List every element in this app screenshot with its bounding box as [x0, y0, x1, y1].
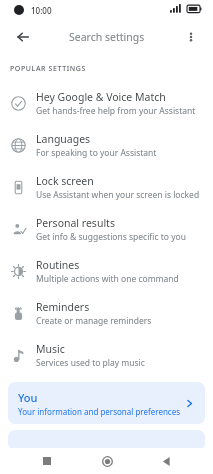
button[interactable]: Languages — [0, 124, 213, 166]
staticText: 10:00 — [31, 5, 52, 16]
button[interactable]: Music — [0, 334, 213, 376]
staticText: POPULAR SETTINGS — [10, 64, 86, 74]
button[interactable]: Home — [94, 448, 120, 474]
button[interactable]: More options — [177, 23, 205, 51]
staticText: Create or manage reminders — [36, 315, 152, 327]
button[interactable]: Routines — [0, 250, 213, 292]
button[interactable]: You — [8, 382, 205, 424]
staticText: Services used to play music — [36, 357, 145, 369]
button[interactable]: Recent apps — [34, 448, 60, 474]
staticText: Music — [36, 342, 65, 356]
staticText: Languages — [36, 132, 91, 146]
staticText: Get hands-free help from your Assistant — [36, 105, 196, 117]
button[interactable]: Back — [8, 22, 38, 52]
staticText: Your information and personal preference… — [18, 406, 181, 417]
staticText: You — [18, 390, 38, 405]
staticText: Multiple actions with one command — [36, 273, 179, 285]
staticText: For speaking to your Assistant — [36, 147, 157, 159]
staticText: Search settings — [69, 30, 145, 44]
staticText: Hey Google & Voice Match — [36, 90, 166, 104]
staticText: Routines — [36, 258, 80, 272]
button[interactable]: Back — [153, 448, 179, 474]
button[interactable] — [8, 430, 205, 450]
staticText: Get info & suggestions specific to you — [36, 231, 186, 243]
staticText: Personal results — [36, 216, 115, 230]
button[interactable]: Reminders — [0, 292, 213, 334]
staticText: Use Assistant when your screen is locked — [36, 189, 200, 201]
button[interactable]: Hey Google & Voice Match — [0, 82, 213, 124]
staticText: Reminders — [36, 300, 90, 314]
button[interactable]: Personal results — [0, 208, 213, 250]
staticText: Lock screen — [36, 174, 94, 188]
button[interactable]: Lock screen — [0, 166, 213, 208]
